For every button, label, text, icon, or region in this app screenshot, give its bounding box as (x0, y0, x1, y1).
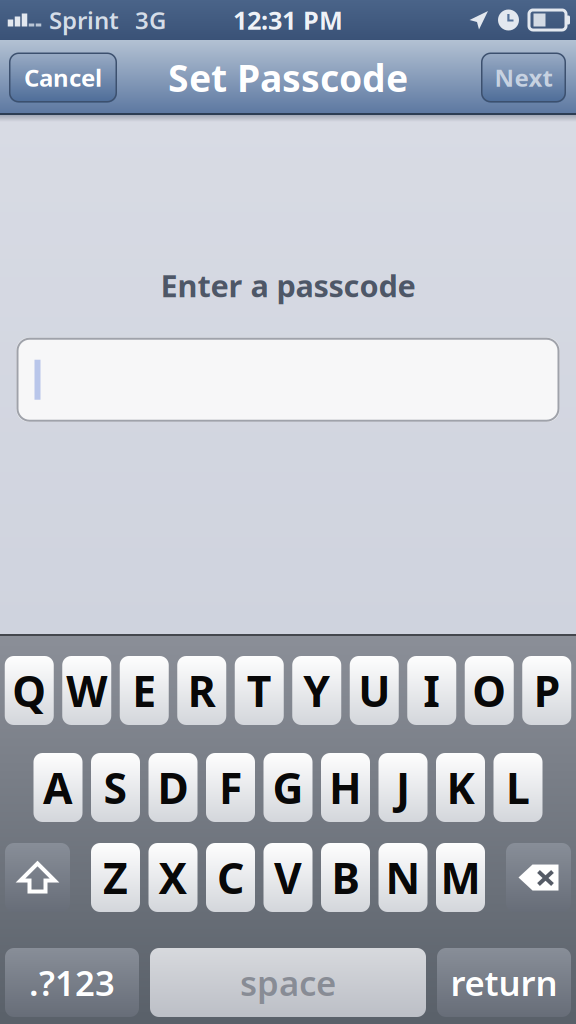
staticText: N (385, 849, 420, 906)
button[interactable]: F (206, 753, 255, 822)
button[interactable]: Y (292, 656, 341, 725)
button[interactable]: Shift (5, 843, 70, 912)
staticText: D (157, 759, 188, 816)
button[interactable]: X (148, 843, 197, 912)
button[interactable]: Z (91, 843, 140, 912)
staticText: M (440, 849, 480, 906)
staticText: Sprint (49, 4, 119, 36)
button[interactable]: Delete (506, 843, 571, 912)
button[interactable]: W (62, 656, 111, 725)
staticText: X (158, 849, 187, 906)
staticText: Enter a passcode (160, 265, 415, 306)
staticText: R (188, 662, 216, 719)
button[interactable]: G (263, 753, 312, 822)
staticText: Next (494, 62, 552, 93)
staticText: H (329, 759, 362, 816)
button[interactable]: U (350, 656, 399, 725)
button[interactable]: .?123 (5, 948, 139, 1017)
button[interactable]: H (321, 753, 370, 822)
button[interactable]: D (148, 753, 197, 822)
button[interactable]: B (321, 843, 370, 912)
staticText: U (358, 662, 390, 719)
staticText: V (274, 849, 302, 906)
staticText: Cancel (24, 62, 102, 93)
staticText: O (472, 662, 506, 719)
button[interactable]: L (493, 753, 542, 822)
button[interactable]: M (436, 843, 485, 912)
staticText: C (217, 849, 244, 906)
staticText: 12:31 PM (233, 3, 343, 37)
button[interactable]: Next (481, 52, 566, 102)
staticText: E (132, 662, 156, 719)
staticText: return (450, 959, 557, 1005)
button[interactable]: I (407, 656, 456, 725)
staticText: S (103, 759, 127, 816)
button[interactable]: J (378, 753, 427, 822)
staticText: W (66, 662, 107, 719)
staticText: L (506, 759, 530, 816)
button[interactable]: P (522, 656, 571, 725)
staticText: Set Passcode (168, 53, 408, 102)
staticText: Z (103, 849, 128, 906)
button[interactable]: R (177, 656, 226, 725)
button[interactable]: space (150, 948, 426, 1017)
staticText: T (247, 662, 272, 719)
button[interactable]: C (206, 843, 255, 912)
button[interactable]: K (436, 753, 485, 822)
button[interactable]: T (235, 656, 284, 725)
button[interactable]: N (378, 843, 427, 912)
button[interactable]: O (465, 656, 514, 725)
staticText: I (423, 662, 440, 719)
staticText: B (331, 849, 359, 906)
staticText: Q (12, 662, 46, 719)
staticText: J (396, 759, 410, 816)
button[interactable]: S (91, 753, 140, 822)
staticText: space (240, 959, 336, 1005)
button[interactable]: Q (5, 656, 54, 725)
staticText: K (446, 759, 474, 816)
staticText: .?123 (29, 959, 115, 1005)
staticText: G (272, 759, 303, 816)
staticText: Y (303, 662, 330, 719)
staticText: 3G (135, 4, 166, 36)
staticText: P (534, 662, 560, 719)
button[interactable]: E (120, 656, 169, 725)
button[interactable]: return (437, 948, 571, 1017)
staticText: A (43, 759, 73, 816)
button[interactable]: Cancel (9, 52, 117, 102)
staticText: F (219, 759, 242, 816)
button[interactable]: V (263, 843, 312, 912)
button[interactable]: A (33, 753, 82, 822)
